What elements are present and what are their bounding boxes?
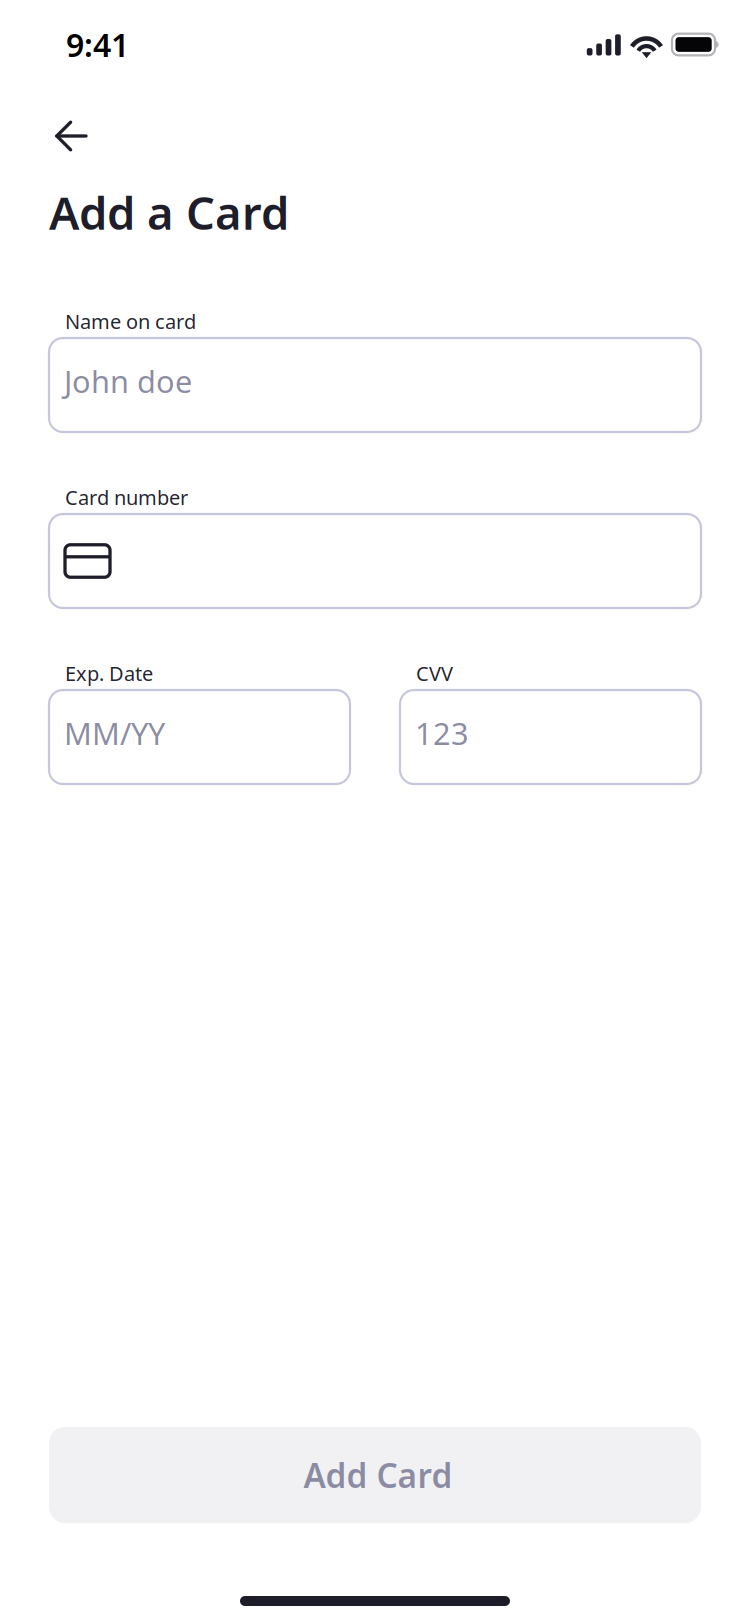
button[interactable]: MM/YY [49,690,350,784]
staticText: Exp. Date [65,660,153,687]
button[interactable]: Back [55,114,101,158]
button[interactable]: John doe [49,338,701,432]
staticText: 123 [415,713,469,753]
staticText: John doe [64,361,192,401]
staticText: MM/YY [64,713,165,753]
button[interactable]: 123 [400,690,701,784]
staticText: Name on card [65,308,196,335]
button[interactable] [49,514,701,608]
button[interactable]: Add Card [49,1427,701,1523]
staticText: Add a Card [49,182,289,242]
staticText: CVV [416,660,453,687]
staticText: Add Card [303,1453,452,1497]
staticText: Card number [65,484,188,511]
staticText: 9:41 [66,23,129,66]
